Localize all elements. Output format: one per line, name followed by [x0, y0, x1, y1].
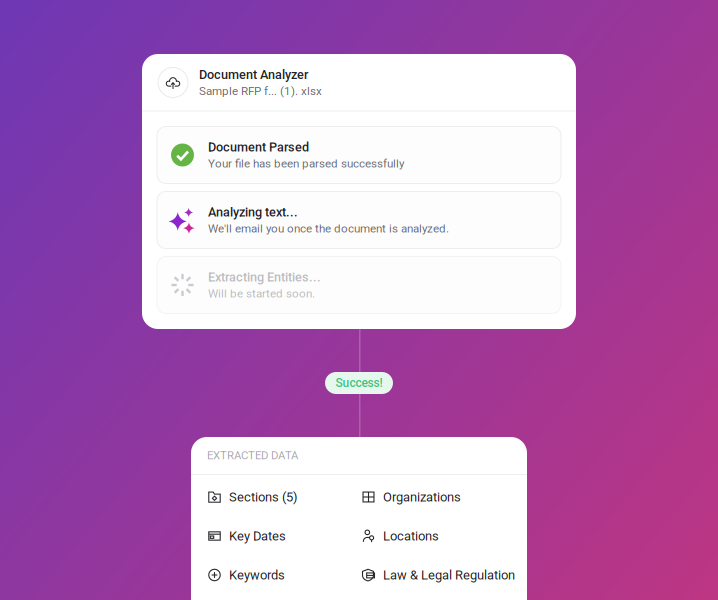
staticText: Law & Legal Regulation [383, 567, 515, 583]
staticText: Success! [335, 376, 382, 390]
button[interactable]: Success! [325, 372, 393, 394]
button[interactable]: Locations [362, 526, 532, 546]
staticText: Keywords [229, 567, 285, 583]
staticText: We'll email you once the document is ana… [208, 222, 449, 235]
button[interactable]: Key Dates [208, 526, 362, 546]
button[interactable]: Law & Legal Regulation [362, 565, 532, 585]
button[interactable]: Keywords [208, 565, 362, 585]
button[interactable]: Analyzing text... [157, 191, 561, 248]
staticText: EXTRACTED DATA [207, 449, 298, 462]
staticText: Organizations [383, 489, 461, 505]
staticText: Your file has been parsed successfully [208, 157, 404, 170]
button[interactable]: Extracting Entities... [157, 256, 561, 313]
button[interactable]: Organizations [362, 487, 532, 507]
staticText: Extracting Entities... [208, 270, 321, 285]
staticText: Document Parsed [208, 140, 309, 155]
button[interactable]: Document Parsed [157, 126, 561, 183]
staticText: Will be started soon. [208, 287, 315, 300]
staticText: Key Dates [229, 528, 286, 544]
staticText: Document Analyzer [199, 67, 308, 82]
staticText: Sample RFP f... (1). xlsx [199, 84, 322, 98]
staticText: Locations [383, 528, 439, 544]
staticText: Sections (5) [229, 489, 298, 505]
button[interactable]: Sections (5) [208, 487, 362, 507]
staticText: Analyzing text... [208, 205, 298, 220]
